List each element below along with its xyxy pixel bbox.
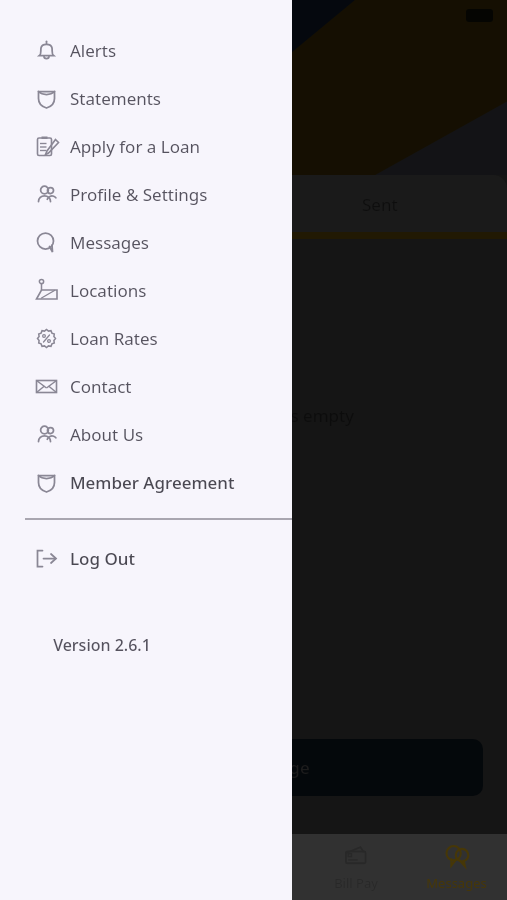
button[interactable]: Profile & Settings bbox=[0, 170, 292, 218]
button[interactable]: Messages bbox=[0, 218, 292, 266]
staticText: Statements bbox=[70, 87, 162, 110]
staticText: Inbox bbox=[104, 193, 150, 216]
button[interactable]: Contact bbox=[0, 362, 292, 410]
staticText: Apply for a Loan bbox=[70, 135, 201, 158]
staticText: Your Sent folder is empty bbox=[153, 404, 354, 427]
staticText: Log Out bbox=[70, 547, 135, 570]
button[interactable]: Loan Rates bbox=[0, 314, 292, 362]
staticText: About Us bbox=[70, 423, 144, 446]
staticText: New Message bbox=[197, 756, 310, 779]
button[interactable]: Member Agreement bbox=[0, 458, 292, 506]
button[interactable]: Statements bbox=[0, 74, 292, 122]
staticText: Alerts bbox=[70, 39, 117, 62]
button[interactable]: New Message bbox=[24, 739, 483, 796]
button[interactable]: Alerts bbox=[0, 26, 292, 74]
button[interactable]: About Us bbox=[0, 410, 292, 458]
button[interactable]: Transfer bbox=[204, 834, 305, 900]
button[interactable]: Apply for a Loan bbox=[0, 122, 292, 170]
button[interactable]: Inbox bbox=[0, 175, 253, 233]
staticText: Messages bbox=[426, 874, 487, 892]
button[interactable]: Log Out bbox=[0, 534, 292, 582]
staticText: Member Agreement bbox=[70, 471, 235, 494]
staticText: Contact bbox=[70, 375, 132, 398]
staticText: Version 2.6.1 bbox=[0, 634, 204, 656]
button[interactable]: Sent bbox=[253, 175, 507, 233]
staticText: Loan Rates bbox=[70, 327, 158, 350]
button[interactable]: Messages bbox=[406, 834, 507, 900]
staticText: Profile & Settings bbox=[70, 183, 208, 206]
staticText: Sent bbox=[362, 193, 398, 216]
staticText: Locations bbox=[70, 279, 147, 302]
button[interactable]: Locations bbox=[0, 266, 292, 314]
staticText: Messages bbox=[70, 231, 150, 254]
